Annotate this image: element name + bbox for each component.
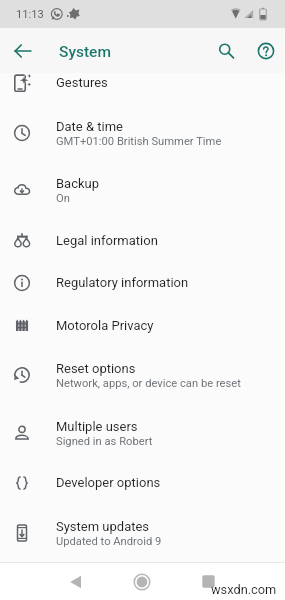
- staticText: 11:13: [16, 8, 44, 21]
- staticText: GMT+01:00 British Summer Time: [56, 135, 222, 148]
- button[interactable]: Recent apps: [187, 563, 229, 600]
- button[interactable]: Backup: [0, 161, 285, 219]
- staticText: Gestures: [56, 75, 108, 90]
- staticText: Updated to Android 9: [56, 535, 162, 548]
- button[interactable]: Regulatory information: [0, 261, 285, 304]
- staticText: System: [59, 43, 111, 61]
- button[interactable]: Developer options: [0, 461, 285, 504]
- button[interactable]: System updates: [0, 504, 285, 561]
- button[interactable]: Multiple users: [0, 404, 285, 461]
- staticText: Regulatory information: [56, 275, 189, 290]
- staticText: Legal information: [56, 233, 158, 248]
- staticText: Motorola Privacy: [56, 318, 154, 333]
- staticText: System updates: [56, 519, 150, 534]
- staticText: Multiple users: [56, 419, 138, 434]
- staticText: Reset options: [56, 361, 136, 376]
- button[interactable]: Legal information: [0, 219, 285, 261]
- staticText: On: [56, 192, 70, 205]
- staticText: Network, apps, or device can be reset: [56, 377, 241, 390]
- staticText: Signed in as Robert: [56, 435, 153, 448]
- staticText: Backup: [56, 176, 100, 191]
- button[interactable]: Search: [208, 33, 244, 69]
- staticText: Date & time: [56, 119, 123, 134]
- button[interactable]: Home: [121, 563, 163, 600]
- button[interactable]: Navigate up: [6, 34, 40, 68]
- staticText: Developer options: [56, 475, 161, 490]
- button[interactable]: Help: [248, 33, 284, 69]
- button[interactable]: Gestures: [0, 73, 285, 104]
- staticText: wsxdn.com: [211, 582, 277, 597]
- button[interactable]: Motorola Privacy: [0, 304, 285, 346]
- button[interactable]: Reset options: [0, 346, 285, 404]
- button[interactable]: Back: [55, 563, 97, 600]
- button[interactable]: Date & time: [0, 104, 285, 161]
